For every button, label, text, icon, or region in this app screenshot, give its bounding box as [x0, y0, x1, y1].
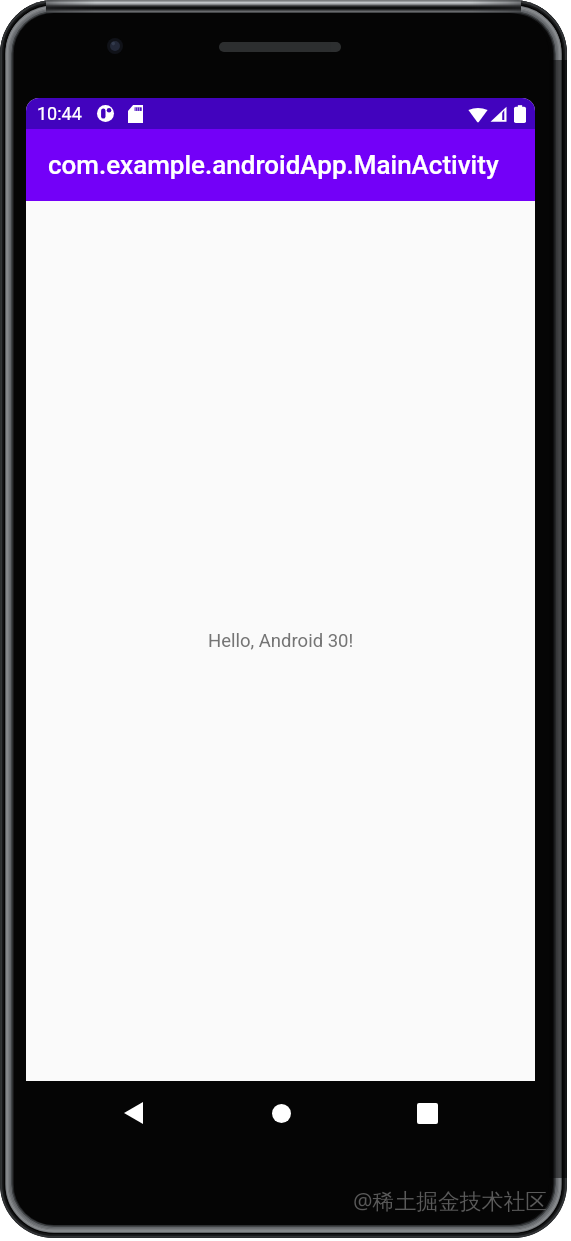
- staticText: Hello, Android 30!: [208, 630, 354, 652]
- staticText: com.example.androidApp.MainActivity: [48, 150, 499, 180]
- staticText: 10:44: [37, 103, 82, 124]
- staticText: @稀土掘金技术社区: [353, 1186, 547, 1216]
- button[interactable]: Home: [257, 1089, 305, 1137]
- button[interactable]: Recent apps: [403, 1089, 451, 1137]
- button[interactable]: Back: [109, 1089, 157, 1137]
